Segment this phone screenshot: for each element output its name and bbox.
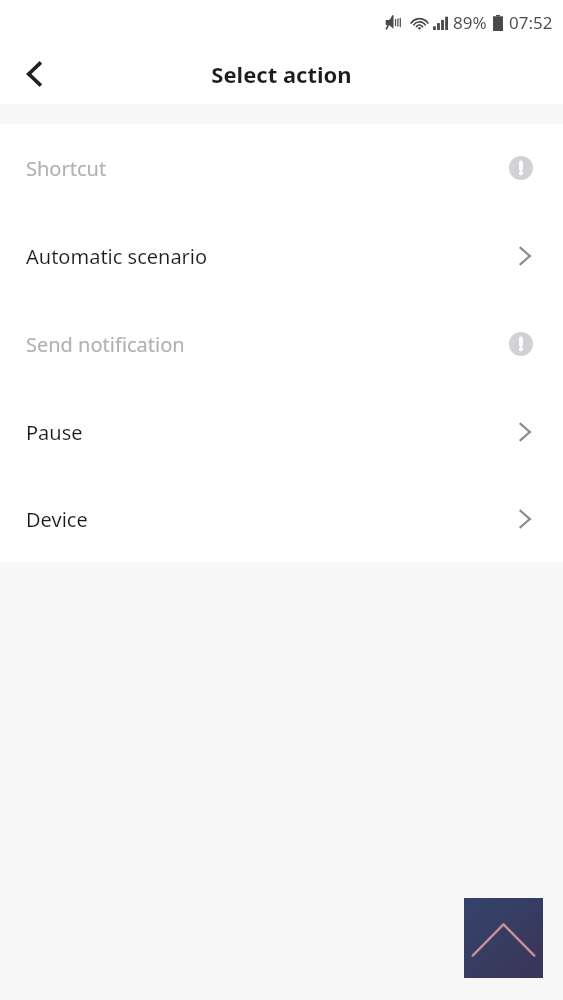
staticText: Device <box>26 506 88 533</box>
staticText: Automatic scenario <box>26 243 208 270</box>
button[interactable]: Shortcut <box>0 124 563 212</box>
button[interactable]: Back <box>8 48 60 100</box>
button[interactable]: Preview image <box>464 898 543 978</box>
button[interactable]: Pause <box>0 388 563 476</box>
staticText: Send notification <box>26 331 185 358</box>
staticText: 07:52 <box>509 11 553 34</box>
staticText: 89% <box>453 11 487 34</box>
button[interactable]: Automatic scenario <box>0 212 563 300</box>
staticText: Shortcut <box>26 155 107 182</box>
staticText: Select action <box>0 59 563 89</box>
staticText: Pause <box>26 419 83 446</box>
button[interactable]: Device <box>0 476 563 562</box>
button[interactable]: Send notification <box>0 300 563 388</box>
